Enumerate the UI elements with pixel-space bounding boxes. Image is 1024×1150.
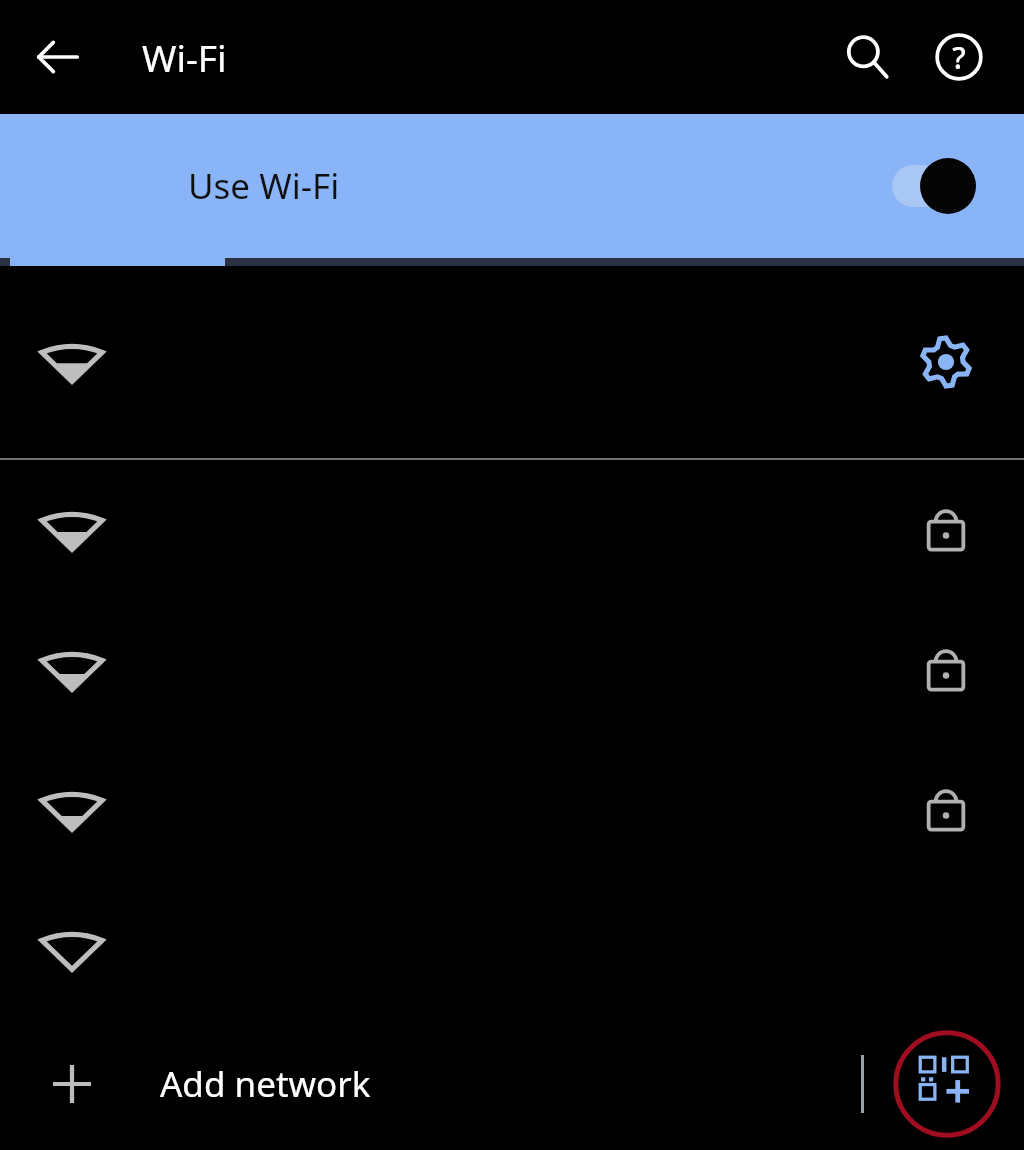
button[interactable] bbox=[0, 880, 1024, 1020]
button[interactable]: Secured network bbox=[898, 762, 994, 858]
button[interactable]: Scan QR code to add network bbox=[892, 1029, 1002, 1139]
button[interactable]: Back bbox=[22, 21, 94, 93]
button[interactable]: Secured network bbox=[898, 622, 994, 718]
button[interactable]: Secured network bbox=[0, 460, 1024, 600]
button[interactable]: Search bbox=[828, 18, 906, 96]
button[interactable]: Add network bbox=[0, 1020, 1024, 1148]
button[interactable]: Network settings bbox=[0, 266, 1024, 458]
button[interactable]: Use Wi-Fi bbox=[0, 114, 1024, 258]
staticText: Use Wi-Fi bbox=[188, 162, 340, 210]
button[interactable]: Secured network bbox=[0, 740, 1024, 880]
button[interactable]: Network settings bbox=[898, 314, 994, 410]
staticText: Add network bbox=[160, 1060, 371, 1108]
staticText: Wi-Fi bbox=[142, 32, 227, 82]
staticText: ? bbox=[952, 37, 966, 78]
button[interactable]: Secured network bbox=[898, 482, 994, 578]
button[interactable]: Help bbox=[920, 18, 998, 96]
button[interactable]: Secured network bbox=[0, 600, 1024, 740]
